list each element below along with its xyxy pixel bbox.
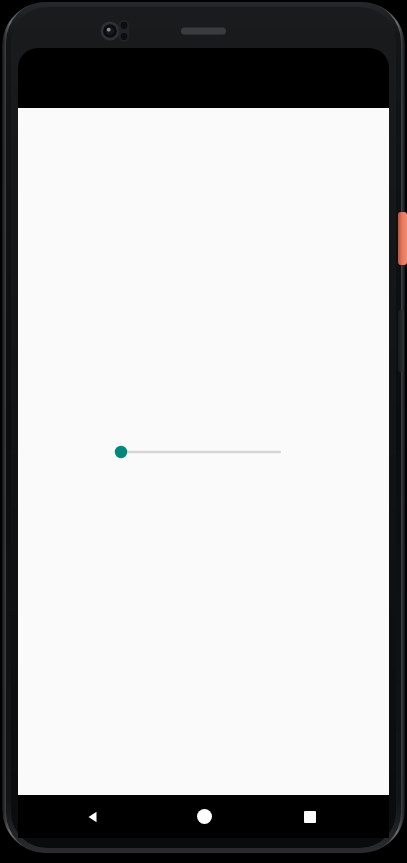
button[interactable]: Home	[182, 795, 226, 838]
button[interactable]: Back	[71, 795, 115, 838]
button[interactable]: Recent apps	[288, 795, 332, 838]
button[interactable]: Slider	[105, 438, 297, 466]
